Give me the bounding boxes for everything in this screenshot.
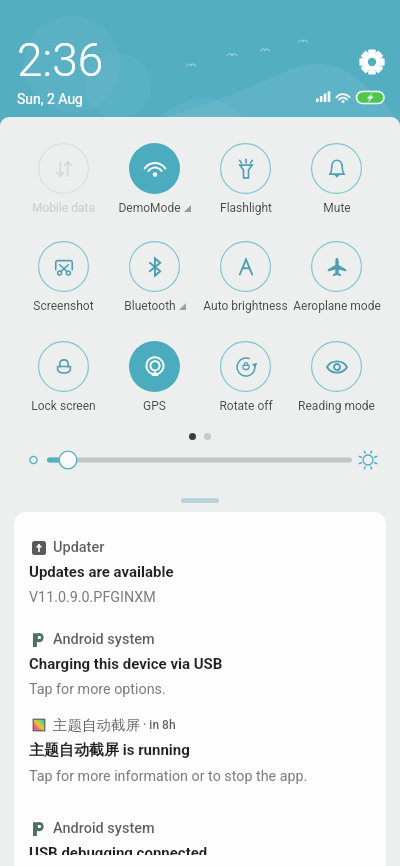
- button[interactable]: Aeroplane mode: [291, 241, 382, 315]
- button[interactable]: Rotate off: [200, 341, 291, 415]
- staticText: Flashlight: [220, 201, 272, 215]
- button[interactable]: Flashlight: [200, 143, 291, 217]
- staticText: Bluetooth: [124, 299, 176, 313]
- staticText: USB debugging connected: [29, 844, 208, 855]
- staticText: Sun, 2 Aug: [17, 91, 83, 107]
- button[interactable]: DemoMode: [109, 143, 200, 217]
- button[interactable]: Settings: [360, 50, 384, 74]
- staticText: DemoMode: [118, 201, 181, 215]
- button[interactable]: Reading mode: [291, 341, 382, 415]
- button[interactable]: Auto brightness: [200, 241, 291, 315]
- staticText: GPS: [143, 399, 166, 413]
- staticText: 2:36: [17, 33, 104, 87]
- staticText: 主题自动截屏 is running: [29, 741, 190, 760]
- staticText: Updates are available: [29, 563, 174, 581]
- staticText: 主题自动截屏: [53, 716, 140, 734]
- staticText: Mobile data: [32, 201, 95, 215]
- staticText: V11.0.9.0.PFGINXM: [29, 589, 156, 606]
- staticText: Lock screen: [31, 399, 96, 413]
- button[interactable]: Mute: [291, 143, 382, 217]
- staticText: Android system: [53, 631, 155, 648]
- button[interactable]: Android system: [14, 620, 386, 705]
- staticText: Aeroplane mode: [293, 299, 381, 313]
- staticText: Reading mode: [298, 399, 375, 413]
- staticText: Charging this device via USB: [29, 655, 223, 673]
- staticText: Rotate off: [219, 399, 273, 413]
- button[interactable]: 主题自动截屏: [14, 705, 386, 809]
- staticText: Updater: [53, 539, 105, 556]
- staticText: Mute: [323, 201, 351, 215]
- button[interactable]: Bluetooth: [109, 241, 200, 315]
- staticText: Android system: [53, 820, 155, 837]
- button[interactable]: Screenshot: [18, 241, 109, 315]
- staticText: Tap for more options.: [29, 681, 166, 698]
- button[interactable]: Mobile data: [18, 143, 109, 217]
- button[interactable]: Updater: [14, 516, 386, 620]
- staticText: · in 8h: [140, 718, 176, 732]
- staticText: Auto brightness: [203, 299, 288, 313]
- staticText: Screenshot: [33, 299, 94, 313]
- button[interactable]: Lock screen: [18, 341, 109, 415]
- staticText: Tap for more information or to stop the …: [29, 768, 308, 785]
- button[interactable]: Brightness: [0, 449, 400, 471]
- button[interactable]: GPS: [109, 341, 200, 415]
- button[interactable]: Android system: [14, 809, 386, 866]
